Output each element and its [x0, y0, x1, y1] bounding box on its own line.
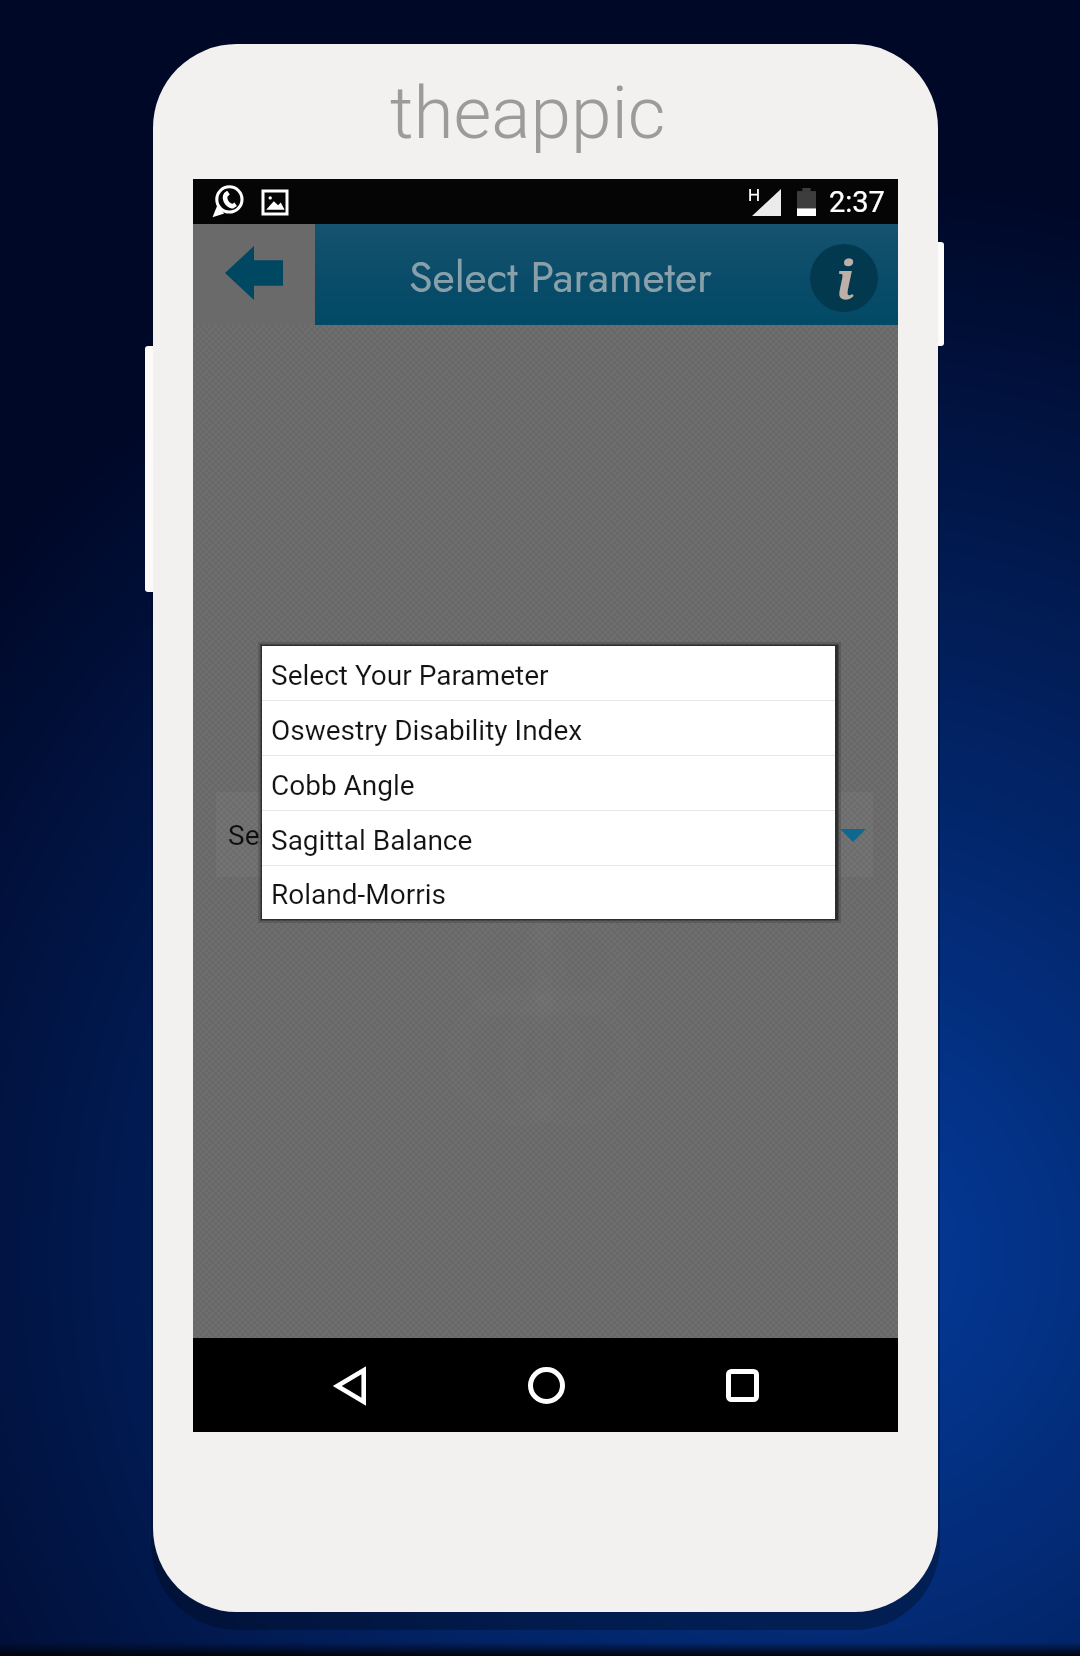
- button[interactable]: Select Your Parameter: [216, 792, 873, 877]
- button[interactable]: Sagittal Balance: [262, 811, 835, 866]
- button[interactable]: Back: [193, 224, 315, 325]
- staticText: Select Your Parameter: [271, 659, 549, 692]
- button[interactable]: Cobb Angle: [262, 756, 835, 811]
- button[interactable]: Recent apps: [703, 1348, 781, 1423]
- button[interactable]: Info: [810, 244, 878, 312]
- staticText: Oswestry Disability Index: [271, 714, 583, 747]
- staticText: Cobb Angle: [271, 769, 415, 802]
- staticText: Sagittal Balance: [271, 824, 473, 857]
- staticText: Select Your Parameter: [228, 819, 506, 852]
- button[interactable]: Home: [507, 1348, 585, 1423]
- staticText: theappic: [390, 70, 666, 156]
- staticText: 2:37: [829, 185, 885, 219]
- staticText: Select Parameter: [409, 246, 712, 308]
- button[interactable]: Select Your Parameter: [262, 646, 835, 701]
- button[interactable]: Back: [311, 1348, 389, 1423]
- staticText: Roland-Morris: [271, 878, 446, 911]
- staticText: i: [836, 244, 855, 311]
- staticText: H: [748, 185, 761, 205]
- button[interactable]: Roland-Morris: [262, 866, 835, 919]
- button[interactable]: Oswestry Disability Index: [262, 701, 835, 756]
